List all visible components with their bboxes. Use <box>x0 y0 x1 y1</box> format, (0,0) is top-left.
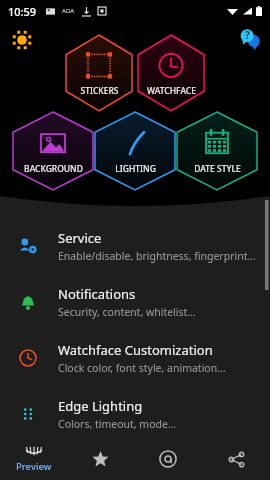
staticText: Watchface Customization <box>58 341 213 359</box>
staticText: Security, content, whitelist… <box>58 305 196 319</box>
button[interactable]: BACKGROUND <box>13 112 93 190</box>
staticText: Enable/disable, brightness, fingerprint… <box>58 249 256 263</box>
staticText: Colors, timeout, mode… <box>58 417 177 431</box>
button[interactable]: Help <box>236 25 264 53</box>
button[interactable]: STICKERS <box>66 35 132 111</box>
button[interactable]: Watchface Customization <box>0 334 270 382</box>
staticText: WATCHFACE <box>147 85 196 97</box>
staticText: Edge Lighting <box>58 397 143 415</box>
staticText: Service <box>58 229 102 247</box>
staticText: ? <box>245 28 250 42</box>
button[interactable]: Share <box>202 438 270 480</box>
button[interactable]: Edge Lighting <box>0 390 270 438</box>
staticText: DATE STYLE <box>194 163 241 175</box>
button[interactable]: Preview <box>0 438 67 480</box>
staticText: LIGHTING <box>115 163 156 175</box>
button[interactable]: Contact <box>134 438 202 480</box>
staticText: AOA <box>62 7 75 15</box>
button[interactable]: LIGHTING <box>95 112 175 190</box>
staticText: 10:59 <box>8 4 37 19</box>
staticText: STICKERS <box>80 85 119 97</box>
button[interactable]: WATCHFACE <box>138 35 204 111</box>
staticText: Notifications <box>58 285 136 303</box>
staticText: Preview <box>16 460 52 473</box>
button[interactable]: Theme <box>9 27 35 53</box>
button[interactable]: Notifications <box>0 278 270 326</box>
staticText: Clock color, font style, animation… <box>58 361 226 375</box>
staticText: BACKGROUND <box>24 163 83 175</box>
button[interactable]: Favorites <box>67 438 134 480</box>
button[interactable]: Service <box>0 222 270 270</box>
button[interactable]: DATE STYLE <box>177 112 257 190</box>
